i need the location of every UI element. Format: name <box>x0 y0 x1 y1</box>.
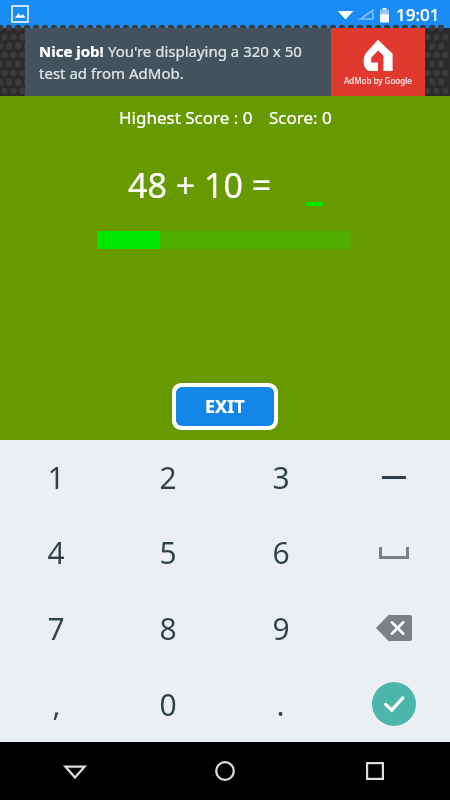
staticText: 48 + 10 = <box>128 162 272 208</box>
button[interactable]: Home <box>150 742 300 800</box>
staticText: Highest Score : 0 <box>119 106 253 129</box>
button[interactable]: 1 <box>0 440 112 515</box>
staticText: , <box>52 684 61 725</box>
button[interactable]: 0 <box>112 666 224 742</box>
button[interactable]: EXIT <box>176 387 274 426</box>
staticText: 1 <box>47 457 65 498</box>
button[interactable]: 9 <box>224 590 337 666</box>
staticText: 2 <box>159 457 177 498</box>
staticText: 7 <box>47 608 65 649</box>
staticText: AdMob by Google <box>344 75 412 86</box>
staticText: Nice job! <box>39 41 104 61</box>
staticText: 6 <box>272 532 290 573</box>
button[interactable]: 6 <box>224 515 337 590</box>
button[interactable]: . <box>224 666 337 742</box>
button[interactable]: Back <box>0 742 150 800</box>
button[interactable]: 5 <box>112 515 224 590</box>
staticText: 4 <box>47 532 65 573</box>
staticText: You're displaying a 320 x 50 <box>104 41 302 61</box>
staticText: test ad from AdMob. <box>39 63 184 83</box>
button[interactable]: Enter <box>337 666 450 742</box>
staticText: 5 <box>159 532 177 573</box>
button[interactable]: Backspace <box>337 590 450 666</box>
button[interactable]: Recents <box>300 742 450 800</box>
button[interactable]: 4 <box>0 515 112 590</box>
staticText: 0 <box>159 684 177 725</box>
staticText: Score: 0 <box>269 106 332 129</box>
staticText: 19:01 <box>396 3 440 26</box>
staticText: EXIT <box>205 394 245 419</box>
staticText: 9 <box>272 608 290 649</box>
button[interactable]: 3 <box>224 440 337 515</box>
button[interactable]: , <box>0 666 112 742</box>
button[interactable]: Space <box>337 515 450 590</box>
staticText: 8 <box>159 608 177 649</box>
staticText: . <box>276 684 285 725</box>
button[interactable]: 8 <box>112 590 224 666</box>
button[interactable]: 7 <box>0 590 112 666</box>
button[interactable]: Nice job! <box>0 28 450 96</box>
button[interactable]: Minus <box>337 440 450 515</box>
button[interactable]: 2 <box>112 440 224 515</box>
staticText: 3 <box>272 457 290 498</box>
